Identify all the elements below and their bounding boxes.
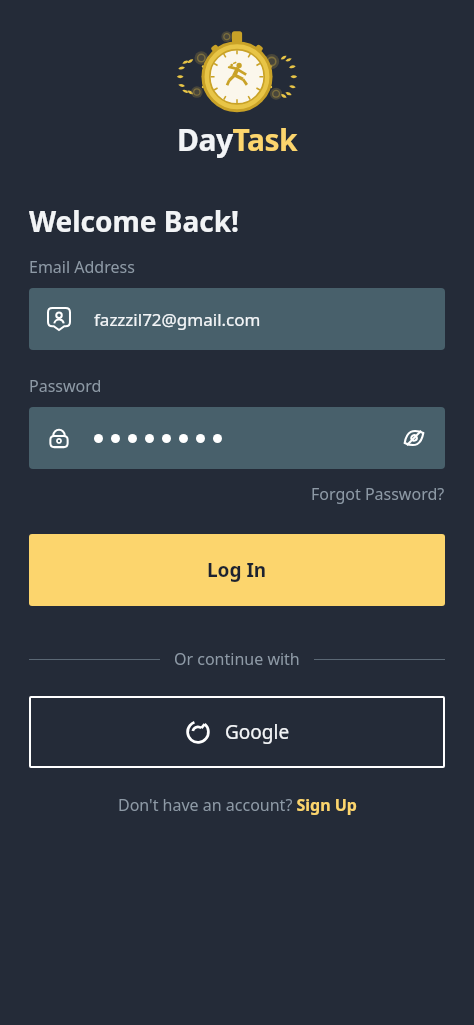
staticText: DayTask	[177, 119, 298, 160]
staticText: Forgot Password?	[311, 483, 445, 505]
button[interactable]: Don't have an account? Sign Up	[118, 794, 357, 816]
staticText: Email Address	[29, 256, 135, 278]
staticText: Log In	[207, 557, 267, 583]
staticText: Don't have an account? Sign Up	[118, 794, 357, 816]
staticText: Password	[29, 375, 102, 397]
button[interactable]: Show password	[399, 423, 429, 453]
staticText: Or continue with	[174, 648, 300, 670]
staticText: Google	[225, 719, 290, 745]
button[interactable]: Google	[29, 696, 445, 768]
button[interactable]: fazzzil72@gmail.com	[29, 288, 445, 350]
button[interactable]: Show password	[29, 407, 445, 469]
button[interactable]: Forgot Password?	[311, 483, 445, 505]
button[interactable]: Log In	[29, 534, 445, 606]
staticText: fazzzil72@gmail.com	[94, 308, 261, 331]
staticText: Welcome Back!	[29, 202, 239, 240]
